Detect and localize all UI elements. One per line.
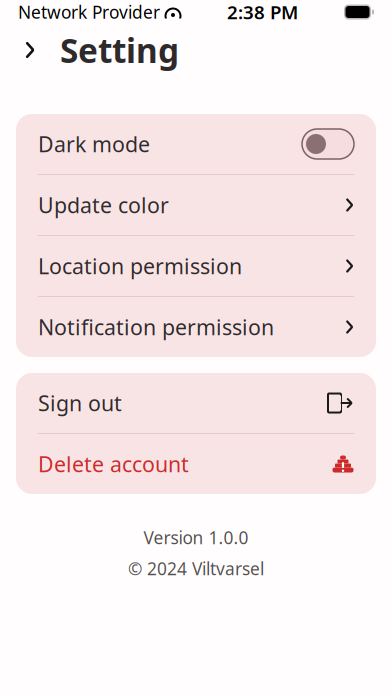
staticText: Network Provider — [18, 0, 160, 23]
staticText: Sign out — [38, 389, 122, 417]
staticText: Dark mode — [38, 130, 150, 158]
button[interactable]: Dark mode — [16, 114, 376, 174]
staticText: Version 1.0.0 — [143, 526, 248, 549]
staticText: Update color — [38, 191, 169, 219]
button[interactable]: Sign out — [16, 373, 376, 433]
staticText: 2:38 PM — [227, 0, 298, 24]
staticText: © 2024 Viltvarsel — [128, 557, 264, 580]
staticText: Setting — [60, 28, 179, 72]
button[interactable]: Back — [8, 28, 52, 72]
button[interactable]: Update color — [16, 175, 376, 235]
button[interactable]: Delete account — [16, 434, 376, 494]
button[interactable]: Notification permission — [16, 297, 376, 357]
staticText: Delete account — [38, 450, 189, 478]
button[interactable]: Location permission — [16, 236, 376, 296]
staticText: Notification permission — [38, 313, 274, 341]
staticText: Location permission — [38, 252, 242, 280]
